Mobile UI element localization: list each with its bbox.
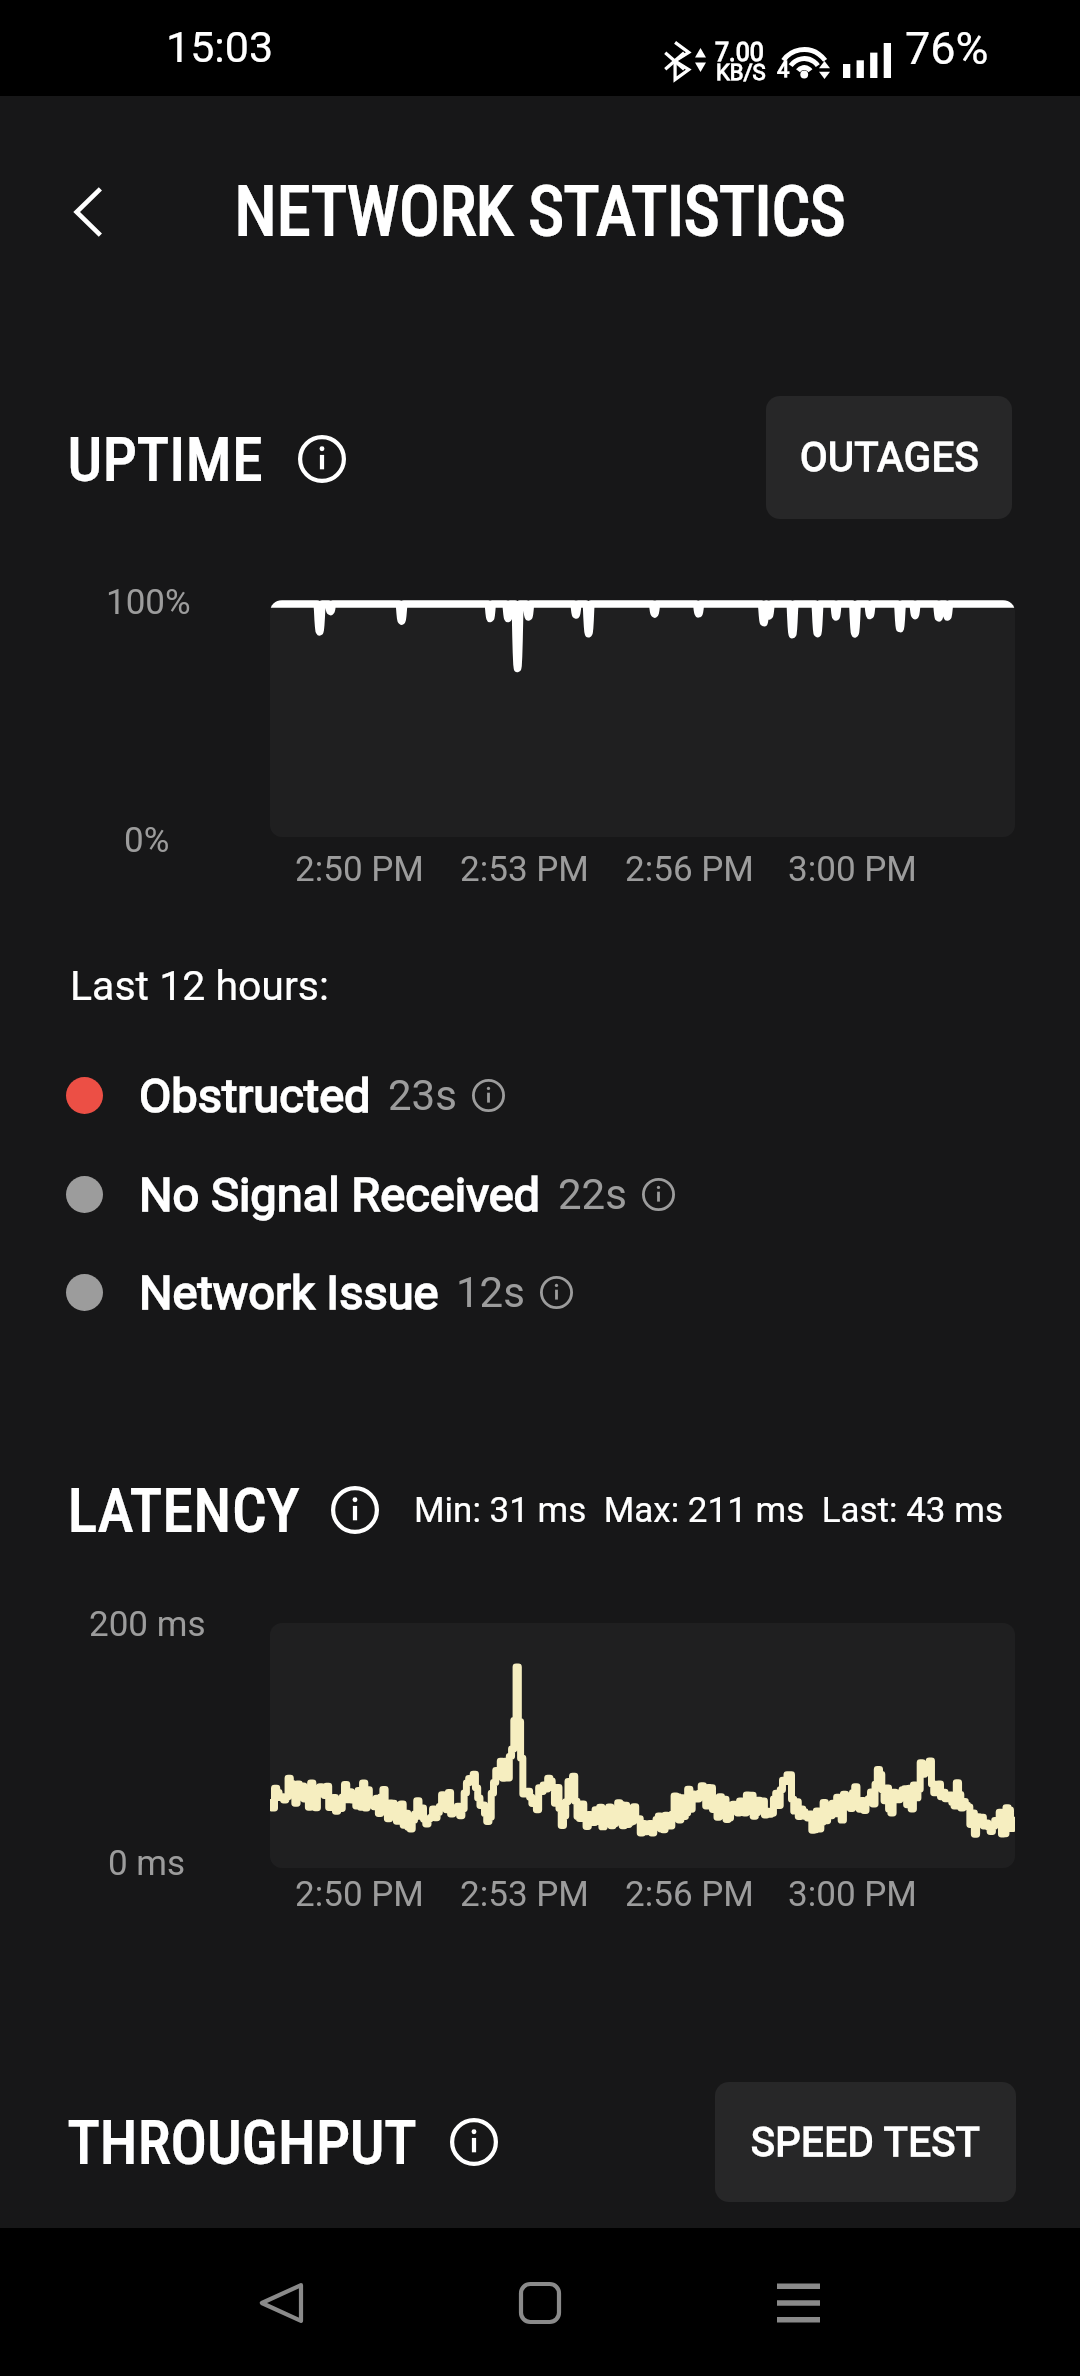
staticText: 2:50 PM bbox=[295, 1874, 424, 1915]
staticText: 22s bbox=[558, 1170, 627, 1219]
staticText: 4 bbox=[777, 57, 790, 83]
staticText: 100% bbox=[106, 582, 191, 623]
staticText: 3:00 PM bbox=[788, 1874, 917, 1915]
staticText: NETWORK STATISTICS bbox=[0, 172, 1080, 252]
staticText: No Signal Received bbox=[139, 1167, 541, 1222]
staticText: LATENCY bbox=[68, 1475, 301, 1545]
staticText: 2:50 PM bbox=[295, 849, 424, 890]
staticText: THROUGHPUT bbox=[68, 2107, 417, 2177]
staticText: 12s bbox=[456, 1268, 525, 1317]
staticText: UPTIME bbox=[68, 424, 264, 494]
button[interactable]: Home bbox=[470, 2233, 610, 2373]
staticText: 0 ms bbox=[108, 1843, 186, 1884]
staticText: Network Issue bbox=[139, 1265, 439, 1320]
button[interactable]: About No Signal Received bbox=[642, 1178, 675, 1211]
staticText: 7.00 bbox=[715, 38, 764, 67]
button[interactable]: About Network Issue bbox=[540, 1276, 573, 1309]
button[interactable]: UPTIME bbox=[68, 421, 346, 497]
button[interactable]: Back bbox=[211, 2233, 351, 2373]
staticText: 2:56 PM bbox=[625, 1874, 754, 1915]
staticText: 2:53 PM bbox=[460, 1874, 589, 1915]
staticText: KB/S bbox=[716, 60, 766, 86]
button[interactable]: Network Issue bbox=[54, 1243, 573, 1341]
button[interactable]: About throughput bbox=[450, 2118, 498, 2166]
staticText: 15:03 bbox=[166, 22, 274, 72]
staticText: 0% bbox=[124, 820, 170, 861]
button[interactable]: About latency bbox=[331, 1486, 379, 1534]
button[interactable]: Back bbox=[44, 168, 132, 256]
staticText: 3:00 PM bbox=[788, 849, 917, 890]
staticText: 200 ms bbox=[89, 1604, 206, 1645]
button[interactable]: SPEED TEST bbox=[715, 2082, 1016, 2202]
staticText: 2:56 PM bbox=[625, 849, 754, 890]
button[interactable]: Recent apps bbox=[728, 2233, 868, 2373]
staticText: Min: 31 ms Max: 211 ms Last: 43 ms bbox=[414, 1490, 1003, 1531]
button[interactable]: LATENCY bbox=[68, 1472, 1003, 1548]
staticText: SPEED TEST bbox=[751, 2119, 981, 2166]
button[interactable]: About Obstructed bbox=[472, 1079, 505, 1112]
button[interactable]: No Signal Received bbox=[54, 1145, 675, 1243]
button[interactable]: Obstructed bbox=[54, 1046, 505, 1144]
staticText: 2:53 PM bbox=[460, 849, 589, 890]
staticText: OUTAGES bbox=[800, 434, 979, 481]
button[interactable]: About uptime bbox=[298, 435, 346, 483]
staticText: 23s bbox=[388, 1071, 457, 1120]
staticText: 76% bbox=[905, 22, 989, 75]
button[interactable]: OUTAGES bbox=[766, 396, 1012, 519]
button[interactable]: THROUGHPUT bbox=[68, 2104, 498, 2180]
staticText: Last 12 hours: bbox=[70, 962, 329, 1010]
staticText: Obstructed bbox=[139, 1068, 371, 1123]
